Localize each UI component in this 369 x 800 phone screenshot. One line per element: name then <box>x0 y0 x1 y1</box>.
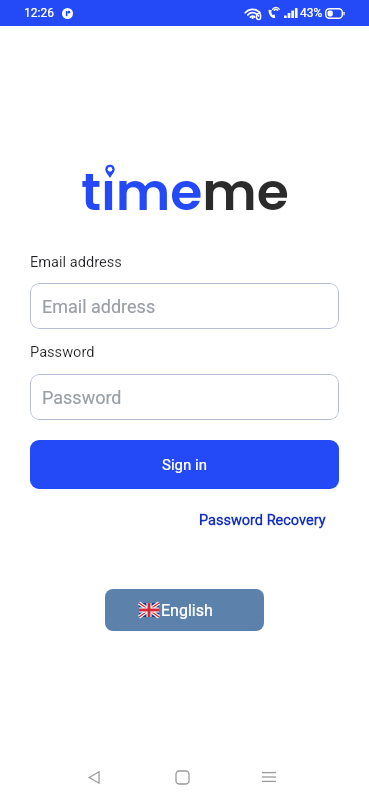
button[interactable]: Recent apps <box>239 754 299 800</box>
button[interactable]: Home <box>152 754 212 800</box>
staticText: Password <box>30 343 95 360</box>
staticText: Password <box>42 387 122 408</box>
button[interactable]: Password Recovery <box>199 512 326 529</box>
button[interactable]: English <box>105 589 264 631</box>
button[interactable]: Email address <box>30 283 339 329</box>
button[interactable]: Back <box>64 754 124 800</box>
staticText: Email address <box>30 253 122 270</box>
button[interactable]: Sign in <box>30 440 339 489</box>
staticText: Sign in <box>162 456 207 474</box>
staticText: 43% <box>300 6 323 20</box>
staticText: 12:26 <box>24 6 54 20</box>
staticText: timeme <box>81 155 289 228</box>
staticText: English <box>161 601 213 620</box>
button[interactable]: Password <box>30 374 339 420</box>
staticText: Email address <box>42 296 156 317</box>
staticText: Password Recovery <box>199 512 326 529</box>
